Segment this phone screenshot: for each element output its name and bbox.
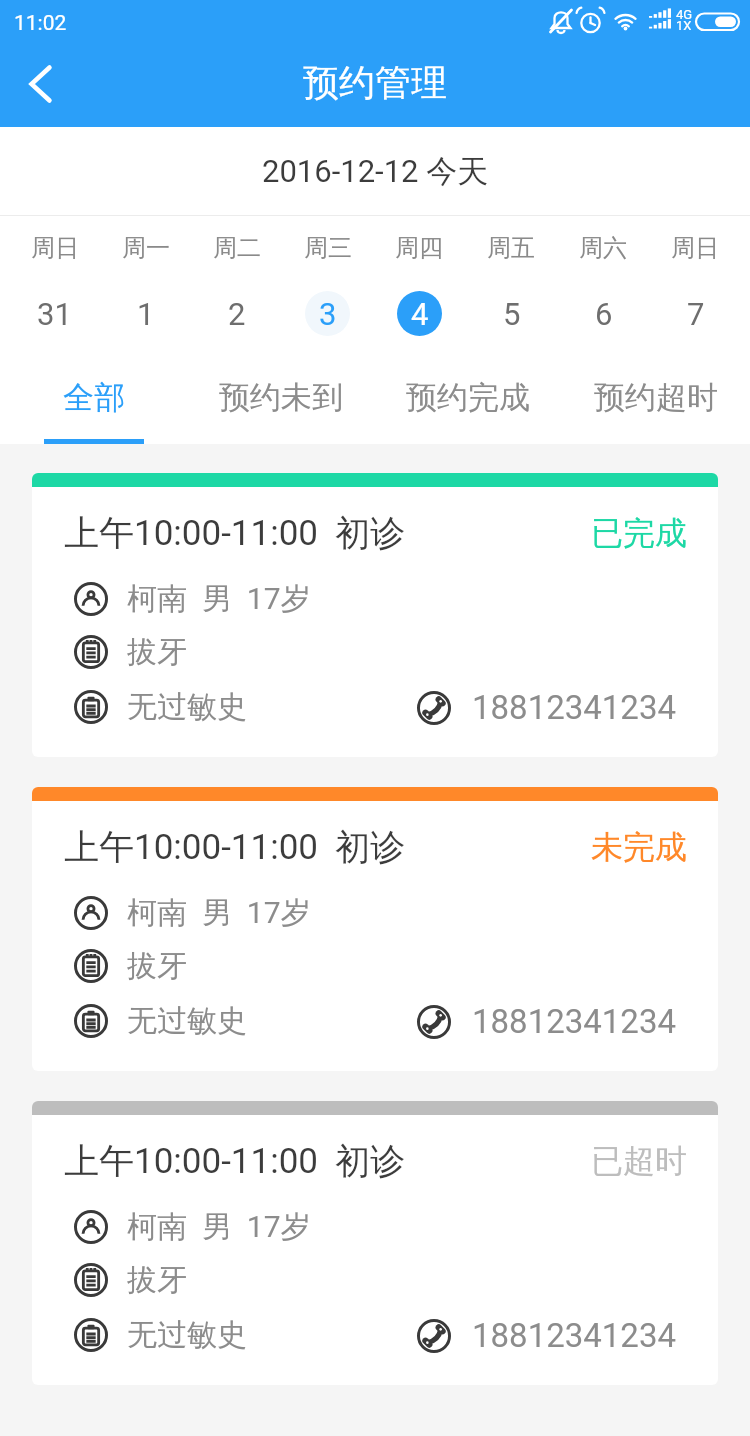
staticText: 2016-12-12 今天 bbox=[262, 152, 489, 191]
staticText: 无过敏史 bbox=[127, 1002, 247, 1040]
staticText: 周四 bbox=[395, 233, 443, 263]
staticText: 周五 bbox=[487, 233, 535, 263]
staticText: 7 bbox=[687, 296, 705, 332]
staticText: 拔牙 bbox=[127, 633, 187, 671]
staticText: 周日 bbox=[31, 233, 79, 263]
staticText: 拔牙 bbox=[127, 1261, 187, 1299]
staticText: 上午10:00-11:00 初诊 bbox=[64, 825, 406, 869]
other: Call patient bbox=[417, 1319, 451, 1353]
staticText: 18812341234 bbox=[472, 1002, 677, 1041]
staticText: 周六 bbox=[579, 233, 627, 263]
staticText: 4 bbox=[411, 296, 429, 332]
staticText: 柯南 男 17岁 bbox=[127, 580, 311, 618]
staticText: 2 bbox=[228, 296, 246, 332]
staticText: 上午10:00-11:00 初诊 bbox=[64, 511, 406, 555]
staticText: 无过敏史 bbox=[127, 1316, 247, 1354]
button[interactable]: 全部 bbox=[0, 350, 187, 445]
staticText: 周二 bbox=[213, 233, 261, 263]
staticText: 1X bbox=[676, 18, 692, 33]
button[interactable]: 上午10:00-11:00 初诊 bbox=[32, 787, 718, 1071]
staticText: 1 bbox=[137, 296, 155, 332]
button[interactable]: 7 bbox=[673, 291, 718, 336]
staticText: 已完成 bbox=[591, 513, 687, 553]
staticText: 周日 bbox=[671, 233, 719, 263]
button[interactable]: 5 bbox=[489, 291, 534, 336]
button[interactable]: Back bbox=[10, 54, 70, 114]
staticText: 5 bbox=[503, 296, 521, 332]
button[interactable]: 预约完成 bbox=[374, 350, 562, 445]
other: Call patient bbox=[417, 691, 451, 725]
staticText: 周三 bbox=[304, 233, 352, 263]
button[interactable]: 1 bbox=[123, 291, 168, 336]
staticText: 3 bbox=[319, 296, 337, 332]
staticText: 预约未到 bbox=[219, 378, 343, 417]
button[interactable]: Call patient bbox=[417, 1002, 677, 1041]
button[interactable]: 上午10:00-11:00 初诊 bbox=[32, 1101, 718, 1385]
button[interactable]: Call patient bbox=[417, 688, 677, 727]
staticText: 4G bbox=[676, 7, 693, 22]
button[interactable]: Call patient bbox=[417, 1316, 677, 1355]
button[interactable]: 4 bbox=[397, 291, 442, 336]
button[interactable]: 上午10:00-11:00 初诊 bbox=[32, 473, 718, 757]
staticText: 11:02 bbox=[14, 11, 67, 36]
staticText: 预约超时 bbox=[594, 378, 718, 417]
staticText: 全部 bbox=[63, 378, 125, 417]
staticText: 周一 bbox=[122, 233, 170, 263]
staticText: 18812341234 bbox=[472, 1316, 677, 1355]
staticText: 6 bbox=[595, 296, 613, 332]
button[interactable]: 31 bbox=[32, 291, 77, 336]
staticText: 预约完成 bbox=[406, 378, 530, 417]
staticText: 未完成 bbox=[591, 827, 687, 867]
button[interactable]: 3 bbox=[305, 291, 350, 336]
staticText: 柯南 男 17岁 bbox=[127, 894, 311, 932]
other: Call patient bbox=[417, 1005, 451, 1039]
staticText: 柯南 男 17岁 bbox=[127, 1208, 311, 1246]
staticText: 拔牙 bbox=[127, 947, 187, 985]
staticText: 预约管理 bbox=[303, 60, 447, 105]
staticText: 无过敏史 bbox=[127, 688, 247, 726]
button[interactable]: 预约未到 bbox=[187, 350, 374, 445]
button[interactable]: 6 bbox=[581, 291, 626, 336]
button[interactable]: 预约超时 bbox=[562, 350, 750, 445]
staticText: 18812341234 bbox=[472, 688, 677, 727]
staticText: 31 bbox=[37, 296, 72, 332]
staticText: 已超时 bbox=[591, 1141, 687, 1181]
button[interactable]: 2 bbox=[214, 291, 259, 336]
staticText: 上午10:00-11:00 初诊 bbox=[64, 1139, 406, 1183]
button[interactable]: 2016-12-12 今天 bbox=[0, 127, 750, 216]
